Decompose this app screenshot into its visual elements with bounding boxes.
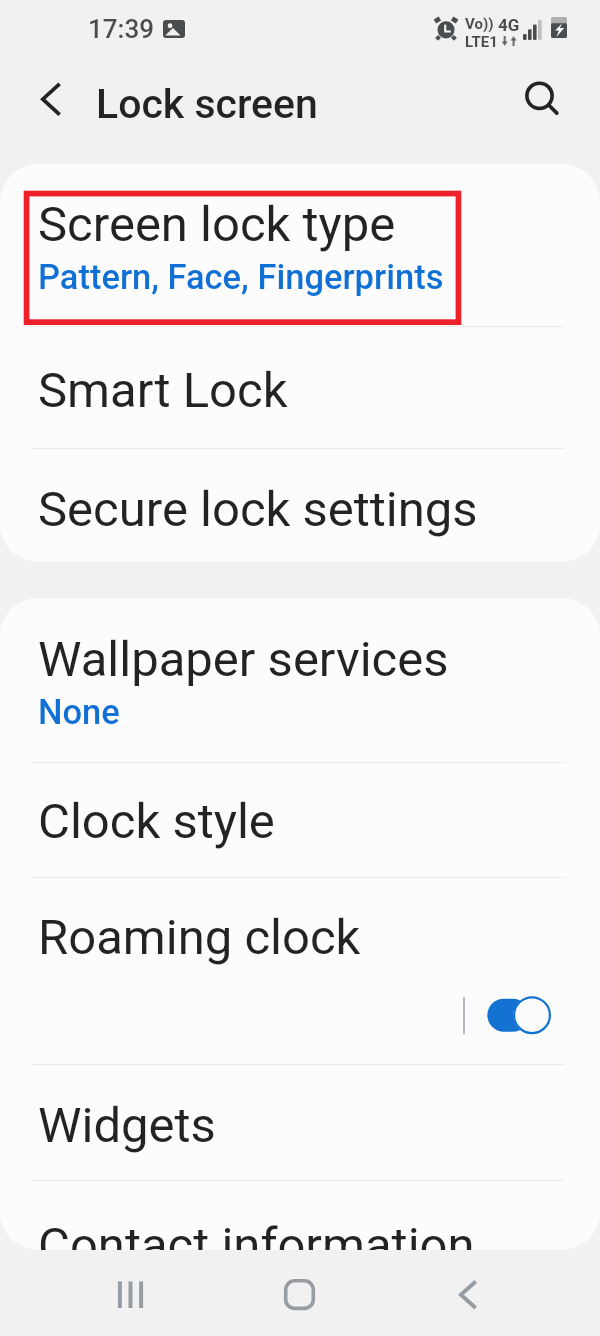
staticText: Widgets: [38, 1097, 216, 1154]
staticText: Roaming clock: [38, 909, 361, 966]
button[interactable]: Screen lock type: [0, 164, 600, 326]
staticText: None: [38, 692, 120, 732]
button[interactable]: Roaming clock switch: [485, 994, 553, 1036]
button[interactable]: Wallpaper services: [0, 598, 600, 762]
staticText: Pattern, Face, Fingerprints: [38, 257, 444, 297]
staticText: 4G: [498, 15, 520, 35]
button[interactable]: Search: [510, 66, 570, 126]
staticText: Lock screen: [96, 80, 318, 128]
button[interactable]: Smart Lock: [0, 326, 600, 448]
button[interactable]: Clock style: [0, 762, 600, 877]
staticText: Wallpaper services: [38, 631, 449, 688]
staticText: Vo)): [465, 15, 494, 33]
button[interactable]: Home: [269, 1263, 330, 1324]
staticText: Screen lock type: [38, 196, 396, 253]
staticText: Clock style: [38, 793, 275, 850]
staticText: Secure lock settings: [38, 481, 478, 538]
staticText: Contact information: [38, 1217, 475, 1250]
button[interactable]: Navigate up: [21, 69, 81, 129]
button[interactable]: Roaming clock: [0, 877, 600, 1064]
button[interactable]: Contact information: [0, 1180, 600, 1250]
button[interactable]: Widgets: [0, 1064, 600, 1180]
button[interactable]: Secure lock settings: [0, 448, 600, 562]
staticText: LTE1: [465, 33, 498, 51]
staticText: Smart Lock: [38, 362, 288, 419]
staticText: 17:39: [88, 14, 154, 44]
button[interactable]: Recent apps: [100, 1263, 161, 1324]
button[interactable]: Back: [437, 1263, 498, 1324]
